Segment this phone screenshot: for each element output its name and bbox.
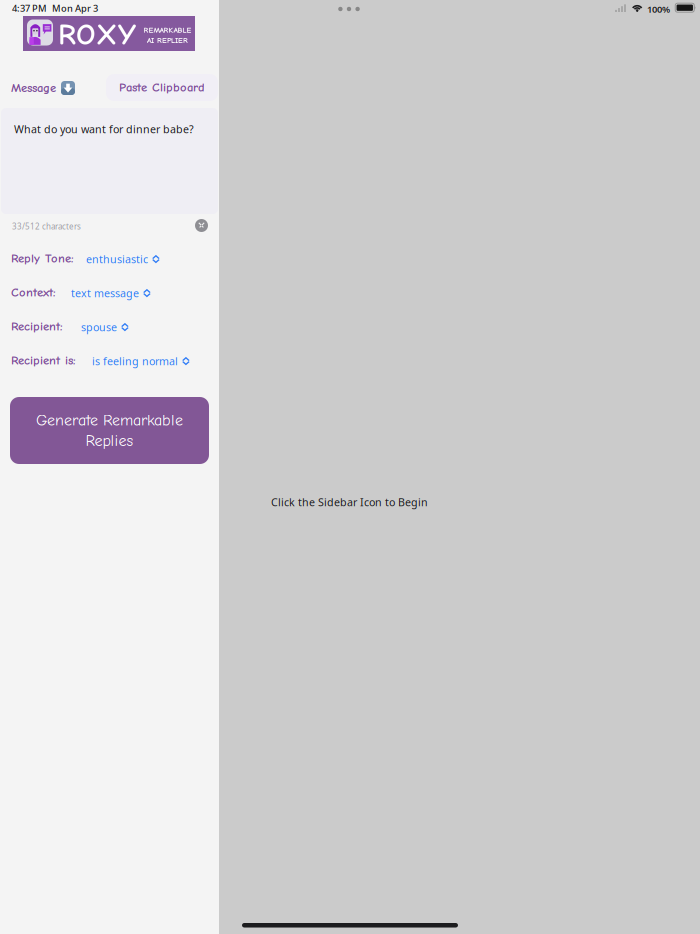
button[interactable]: Clear message [195,219,208,232]
button[interactable]: Context: [11,285,56,300]
staticText: Mon Apr 3 [52,2,98,14]
staticText: 33/512 characters [12,221,81,232]
button[interactable]: is feeling normal [92,354,190,368]
staticText: Message [11,81,56,95]
staticText: Click the Sidebar Icon to Begin [271,495,428,509]
button[interactable]: Multitasking Controls [332,2,366,16]
button[interactable]: Generate Remarkable [10,397,209,464]
button[interactable]: Paste Clipboard [106,74,218,101]
staticText: AI REPLIER [147,36,188,45]
staticText: spouse [81,320,117,334]
staticText: Generate Remarkable [36,411,183,429]
staticText: 100% [647,3,670,15]
button[interactable]: Recipient is: [11,353,76,368]
staticText: Context: [11,285,56,300]
staticText: text message [71,286,139,300]
staticText: Replies [85,431,133,450]
button[interactable]: enthusiastic [86,252,160,266]
button[interactable]: Message [5,76,81,100]
button[interactable]: text message [71,286,151,300]
staticText: Recipient: [11,319,63,334]
staticText: ROXY [58,17,136,52]
staticText: What do you want for dinner babe? [14,122,194,136]
staticText: enthusiastic [86,252,148,266]
staticText: Paste Clipboard [119,80,205,95]
button[interactable]: Recipient: [11,319,63,334]
staticText: Reply Tone: [11,251,74,266]
staticText: Recipient is: [11,353,76,368]
button[interactable]: spouse [81,320,129,334]
button[interactable]: Reply Tone: [11,251,74,266]
staticText: 4:37 PM [12,2,47,14]
staticText: is feeling normal [92,354,178,368]
staticText: REMARKABLE [143,25,191,35]
